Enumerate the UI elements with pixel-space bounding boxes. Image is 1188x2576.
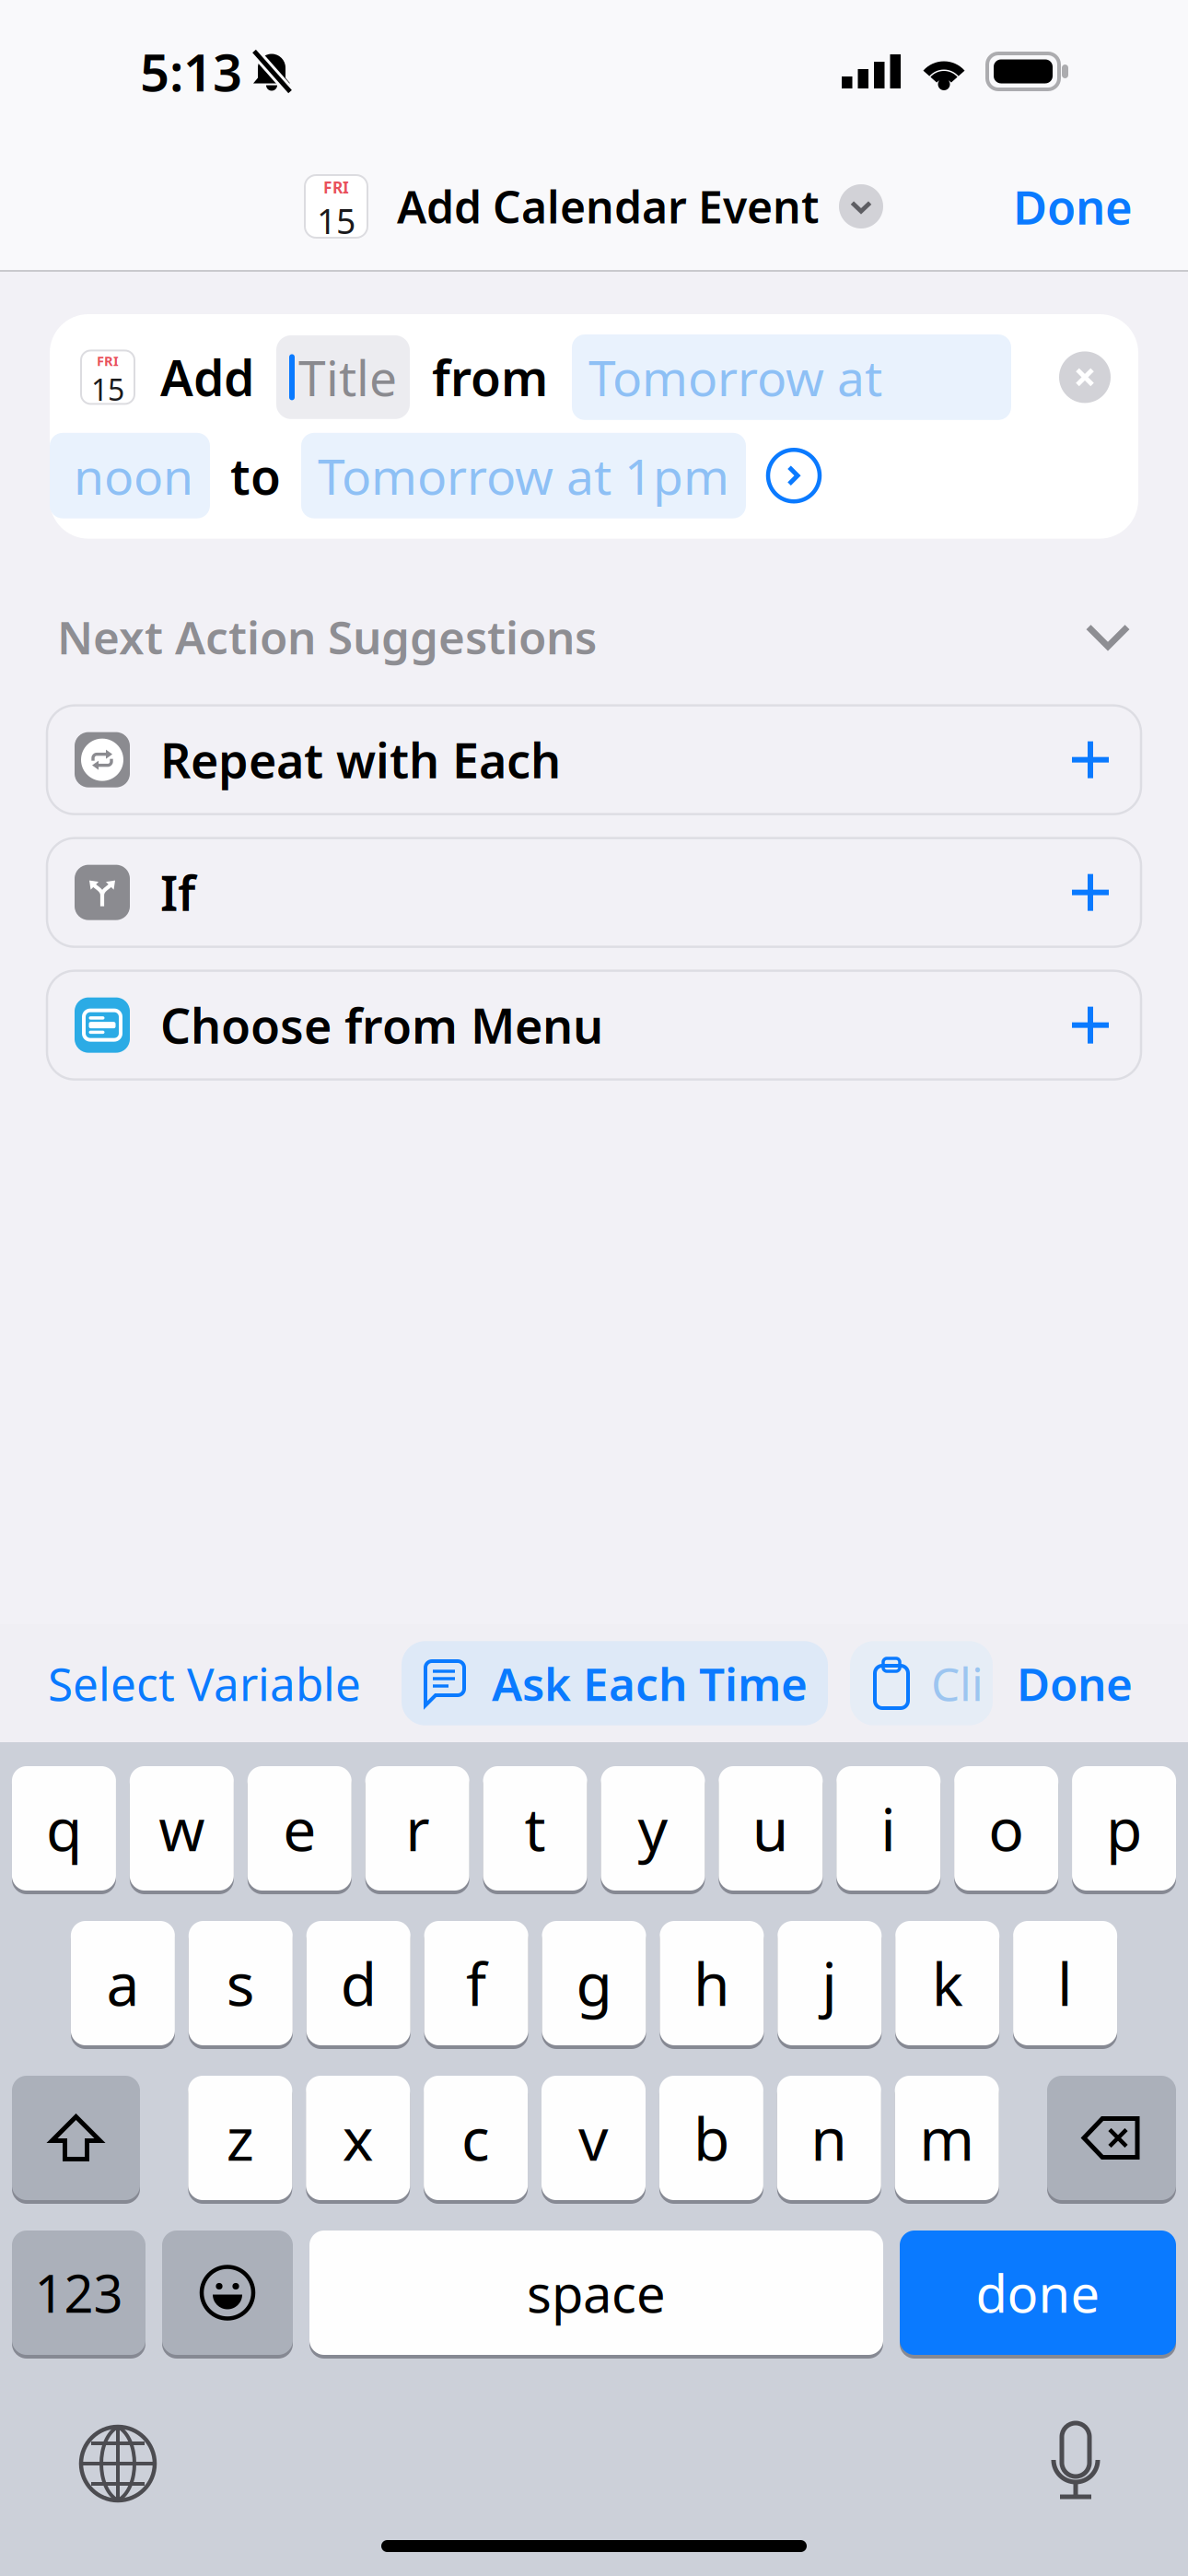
button[interactable]: q <box>12 1766 116 1894</box>
staticText: z <box>226 2099 254 2177</box>
staticText: p <box>1106 1789 1142 1868</box>
button[interactable]: k <box>895 1921 999 2049</box>
button[interactable]: Select Variable <box>37 1635 372 1732</box>
button[interactable]: Dictate <box>1030 2403 1122 2524</box>
staticText: Ask Each Time <box>492 1653 808 1713</box>
staticText: Tomorrow at <box>588 345 882 410</box>
button[interactable]: c <box>424 2076 528 2204</box>
staticText: Cli <box>931 1653 984 1713</box>
staticText: Next Action Suggestions <box>57 607 597 667</box>
button[interactable]: Collapse suggestions <box>1072 603 1144 670</box>
button[interactable]: done <box>900 2231 1176 2359</box>
button[interactable]: y <box>601 1766 705 1894</box>
staticText: f <box>466 1944 486 2022</box>
staticText: e <box>283 1789 316 1868</box>
button[interactable]: Emoji <box>162 2231 293 2359</box>
button[interactable]: If <box>47 838 1141 947</box>
staticText: c <box>461 2099 490 2177</box>
staticText: t <box>525 1789 546 1868</box>
staticText: Tomorrow at 1pm <box>318 443 729 508</box>
staticText: Repeat with Each <box>160 728 561 792</box>
staticText: q <box>46 1789 82 1868</box>
button[interactable]: Delete <box>1047 2076 1176 2204</box>
button[interactable]: t <box>483 1766 587 1894</box>
button[interactable]: i <box>836 1766 940 1894</box>
button[interactable]: Choose from Menu <box>47 971 1141 1079</box>
staticText: If <box>160 861 195 924</box>
button[interactable]: v <box>542 2076 646 2204</box>
staticText: i <box>881 1789 896 1868</box>
button[interactable]: Remove <box>1059 351 1111 403</box>
staticText: FRI <box>97 352 119 370</box>
staticText: s <box>226 1944 255 2022</box>
button[interactable]: j <box>778 1921 882 2049</box>
staticText: noon <box>74 443 193 508</box>
staticText: to <box>230 443 281 508</box>
staticText: w <box>159 1789 205 1868</box>
staticText: l <box>1057 1944 1073 2022</box>
button[interactable]: Cli <box>850 1641 993 1725</box>
button[interactable]: r <box>365 1766 469 1894</box>
staticText: h <box>693 1944 730 2022</box>
staticText: 15 <box>91 370 124 409</box>
staticText: Title <box>298 345 397 410</box>
staticText: done <box>976 2258 1100 2327</box>
staticText: 123 <box>35 2258 123 2327</box>
staticText: from <box>432 345 548 410</box>
staticText: FRI <box>323 177 349 198</box>
button[interactable]: d <box>306 1921 410 2049</box>
button[interactable]: n <box>777 2076 881 2204</box>
staticText: Done <box>1013 175 1133 237</box>
button[interactable]: Shift <box>12 2076 140 2204</box>
button[interactable]: Ask Each Time <box>402 1641 828 1725</box>
button[interactable]: w <box>130 1766 234 1894</box>
button[interactable]: Show details <box>768 450 820 501</box>
staticText: b <box>693 2099 729 2177</box>
button[interactable]: Done <box>1004 1635 1146 1732</box>
staticText: 15 <box>317 198 355 244</box>
button[interactable]: FRI <box>305 166 883 247</box>
button[interactable]: z <box>188 2076 292 2204</box>
staticText: k <box>932 1944 963 2022</box>
button[interactable]: Next keyboard <box>60 2406 176 2522</box>
staticText: j <box>822 1944 837 2022</box>
staticText: Done <box>1017 1653 1133 1713</box>
staticText: o <box>988 1789 1024 1868</box>
button[interactable]: u <box>719 1766 823 1894</box>
staticText: v <box>578 2099 609 2177</box>
button[interactable]: g <box>542 1921 646 2049</box>
button[interactable]: p <box>1072 1766 1176 1894</box>
button[interactable]: space <box>309 2231 883 2359</box>
button[interactable]: h <box>660 1921 764 2049</box>
staticText: r <box>405 1789 429 1868</box>
staticText: n <box>811 2099 848 2177</box>
button[interactable]: Done <box>991 161 1155 252</box>
button[interactable]: x <box>306 2076 410 2204</box>
button[interactable]: l <box>1013 1921 1117 2049</box>
staticText: g <box>576 1944 612 2022</box>
staticText: Add Calendar Event <box>397 177 819 236</box>
staticText: a <box>106 1944 139 2022</box>
button[interactable]: 123 <box>12 2231 146 2359</box>
staticText: m <box>919 2099 975 2177</box>
button[interactable]: b <box>659 2076 763 2204</box>
button[interactable]: f <box>424 1921 528 2049</box>
button[interactable]: s <box>189 1921 293 2049</box>
button[interactable]: Repeat with Each <box>47 705 1141 814</box>
button[interactable]: m <box>895 2076 999 2204</box>
staticText: y <box>638 1789 668 1868</box>
staticText: d <box>340 1944 376 2022</box>
staticText: Choose from Menu <box>160 993 603 1057</box>
staticText: Select Variable <box>48 1653 361 1713</box>
button[interactable]: e <box>248 1766 352 1894</box>
button[interactable]: a <box>71 1921 175 2049</box>
staticText: u <box>752 1789 789 1868</box>
staticText: Add <box>160 345 254 410</box>
staticText: x <box>342 2099 374 2177</box>
staticText: 5:13 <box>140 37 242 106</box>
staticText: space <box>527 2258 666 2327</box>
button[interactable]: o <box>954 1766 1058 1894</box>
